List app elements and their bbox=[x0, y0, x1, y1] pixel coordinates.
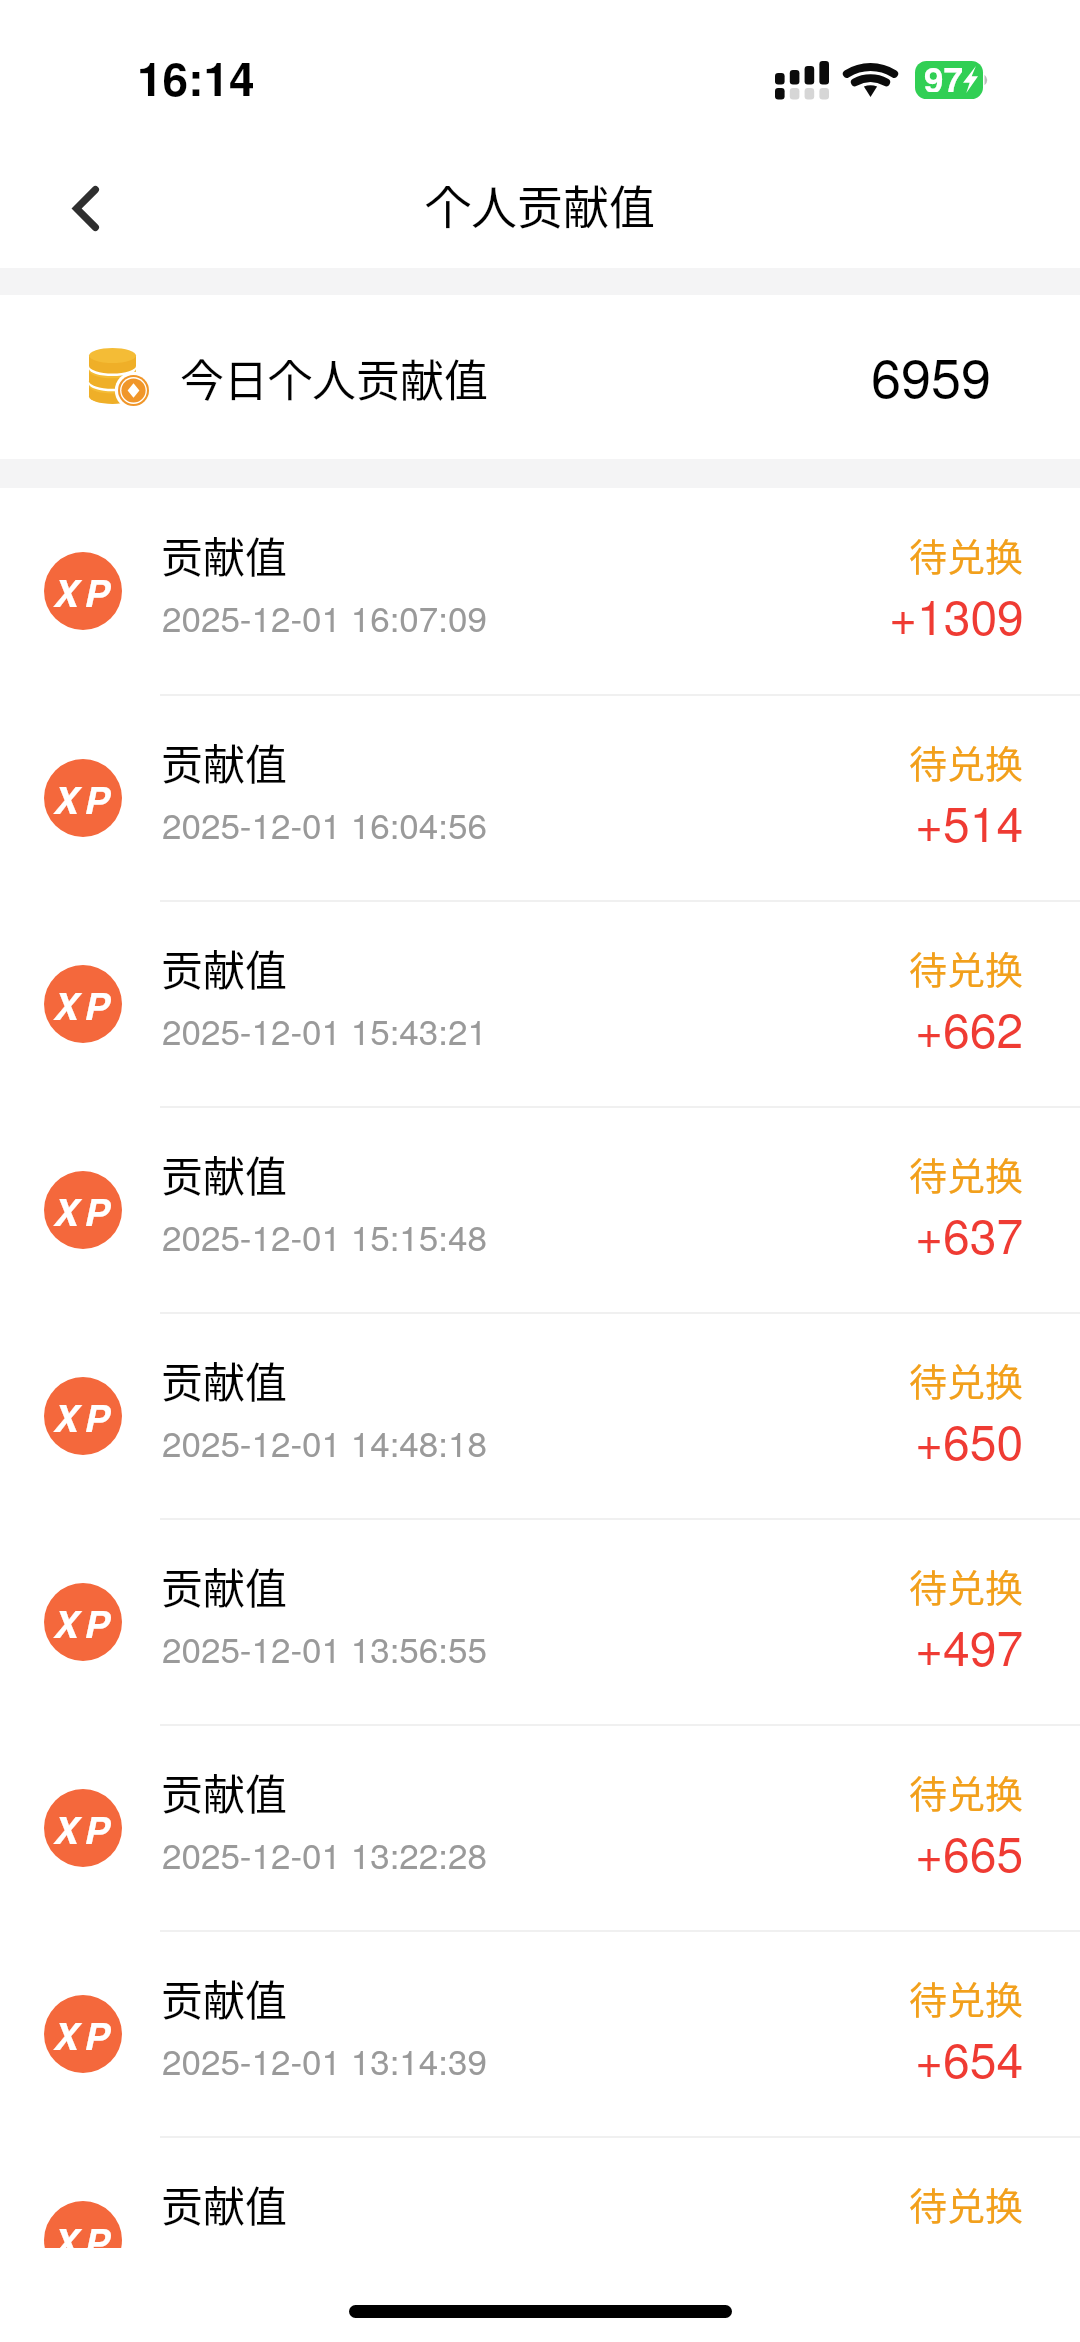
staticText: 2025-12-01 15:15:48 bbox=[162, 1211, 487, 1261]
button[interactable]: XP bbox=[0, 1932, 1080, 2136]
staticText: +665 bbox=[915, 1817, 1024, 1886]
button[interactable]: XP bbox=[0, 1726, 1080, 1930]
staticText: 今日个人贡献值 bbox=[180, 346, 488, 410]
staticText: +662 bbox=[915, 993, 1024, 1062]
staticText: 待兑换 bbox=[909, 1558, 1024, 1613]
staticText: 16:14 bbox=[137, 44, 255, 110]
staticText: XP bbox=[54, 1184, 116, 1237]
staticText: 贡献值 bbox=[161, 2173, 288, 2234]
staticText: 贡献值 bbox=[161, 524, 288, 585]
button[interactable]: 今日个人贡献值 bbox=[0, 295, 1080, 459]
staticText: 97 bbox=[924, 54, 963, 92]
staticText: XP bbox=[54, 2008, 116, 2061]
staticText: 2025-12-01 13:22:28 bbox=[162, 1829, 487, 1879]
staticText: +654 bbox=[915, 2023, 1024, 2092]
button[interactable]: XP bbox=[0, 696, 1080, 900]
staticText: 2025-12-01 13:14:39 bbox=[162, 2035, 487, 2085]
staticText: XP bbox=[54, 565, 116, 618]
staticText: XP bbox=[54, 978, 116, 1031]
staticText: 2025-12-01 13:56:55 bbox=[162, 1623, 487, 1673]
button[interactable]: XP bbox=[0, 1520, 1080, 1724]
staticText: 待兑换 bbox=[909, 2176, 1024, 2231]
button[interactable]: Back bbox=[0, 150, 140, 268]
button[interactable]: XP bbox=[0, 2138, 1080, 2248]
staticText: 贡献值 bbox=[161, 1143, 288, 1204]
staticText: 贡献值 bbox=[161, 1349, 288, 1410]
staticText: 待兑换 bbox=[909, 734, 1024, 789]
staticText: 贡献值 bbox=[161, 1555, 288, 1616]
staticText: 贡献值 bbox=[161, 937, 288, 998]
staticText: 待兑换 bbox=[909, 940, 1024, 995]
staticText: 贡献值 bbox=[161, 1967, 288, 2028]
staticText: +637 bbox=[915, 1199, 1024, 1268]
staticText: +650 bbox=[915, 1405, 1024, 1474]
staticText: 个人贡献值 bbox=[425, 171, 655, 238]
staticText: 待兑换 bbox=[909, 1146, 1024, 1201]
button[interactable]: XP bbox=[0, 902, 1080, 1106]
staticText: 2025-12-01 14:48:18 bbox=[162, 1417, 487, 1467]
button[interactable]: XP bbox=[0, 1314, 1080, 1518]
staticText: XP bbox=[54, 772, 116, 825]
staticText: +514 bbox=[915, 787, 1024, 856]
staticText: +497 bbox=[915, 1611, 1024, 1680]
staticText: 6959 bbox=[871, 336, 992, 413]
staticText: +1309 bbox=[889, 580, 1024, 649]
staticText: 贡献值 bbox=[161, 731, 288, 792]
staticText: 贡献值 bbox=[161, 1761, 288, 1822]
staticText: 2025-12-01 16:07:09 bbox=[162, 592, 487, 642]
staticText: 2025-12-01 16:04:56 bbox=[162, 799, 487, 849]
staticText: 待兑换 bbox=[909, 1352, 1024, 1407]
staticText: XP bbox=[54, 1390, 116, 1443]
button[interactable]: XP bbox=[0, 1108, 1080, 1312]
staticText: 待兑换 bbox=[909, 527, 1024, 582]
staticText: XP bbox=[54, 2214, 116, 2248]
staticText: 待兑换 bbox=[909, 1970, 1024, 2025]
staticText: XP bbox=[54, 1802, 116, 1855]
staticText: 待兑换 bbox=[909, 1764, 1024, 1819]
staticText: XP bbox=[54, 1596, 116, 1649]
button[interactable]: XP bbox=[0, 488, 1080, 694]
staticText: 2025-12-01 15:43:21 bbox=[162, 1005, 487, 1055]
